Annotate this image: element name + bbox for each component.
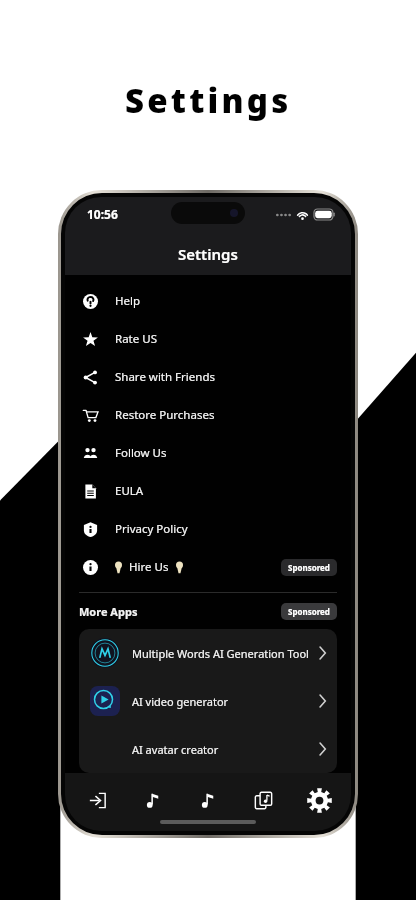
staticText: Share with Friends: [115, 369, 215, 385]
button[interactable]: Login: [74, 777, 120, 823]
staticText: 10:56: [87, 206, 118, 222]
button[interactable]: Multiple Words AI Generation Tool: [79, 629, 337, 677]
staticText: AI video generator: [132, 694, 319, 709]
button[interactable]: Sponsored: [281, 603, 337, 620]
button[interactable]: Settings: [296, 777, 342, 823]
staticText: More Apps: [79, 604, 138, 619]
staticText: AI avatar creator: [132, 742, 319, 757]
staticText: Privacy Policy: [115, 521, 188, 537]
button[interactable]: Rate US: [65, 320, 351, 358]
staticText: Settings: [125, 78, 292, 123]
staticText: Settings: [178, 244, 238, 264]
staticText: Restore Purchases: [115, 407, 215, 423]
button[interactable]: Library: [240, 777, 286, 823]
button[interactable]: AI video generator: [79, 677, 337, 725]
staticText: Multiple Words AI Generation Tool: [132, 646, 319, 661]
staticText: Rate US: [115, 331, 157, 347]
button[interactable]: Share with Friends: [65, 358, 351, 396]
staticText: EULA: [115, 483, 144, 499]
button[interactable]: EULA: [65, 472, 351, 510]
button[interactable]: Music: [130, 777, 176, 823]
button[interactable]: Follow Us: [65, 434, 351, 472]
button[interactable]: Hire Us: [65, 548, 351, 586]
staticText: Help: [115, 293, 141, 309]
staticText: Follow Us: [115, 445, 167, 461]
button[interactable]: Songs: [185, 777, 231, 823]
button[interactable]: Privacy Policy: [65, 510, 351, 548]
button[interactable]: Help: [65, 282, 351, 320]
button[interactable]: AI avatar creator: [79, 725, 337, 773]
staticText: Sponsored: [288, 606, 330, 617]
staticText: Sponsored: [288, 562, 330, 573]
button[interactable]: Restore Purchases: [65, 396, 351, 434]
button[interactable]: Sponsored: [281, 559, 337, 576]
staticText: Hire Us: [129, 559, 169, 575]
